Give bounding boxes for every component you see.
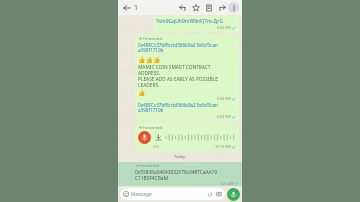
button[interactable]: Forwarded: [135, 34, 239, 121]
button[interactable]: Forwarded: [135, 123, 239, 151]
staticText: 0x4BFCc37bfflcrtd566b9a21b6cf3can a390f1…: [138, 42, 218, 54]
button[interactable]: Reply: [177, 2, 188, 13]
button[interactable]: Record voice message: [227, 188, 240, 201]
staticText: Forwarded: [140, 163, 160, 168]
button[interactable]: Forwarded: [118, 162, 242, 186]
button[interactable]: 7sln9GqUh9mW9nFJ7m-ZjrG: [153, 16, 239, 32]
staticText: Message: [131, 191, 152, 198]
staticText: 7sln9GqUh9mW9nFJ7m-ZjrG: [156, 18, 224, 25]
staticText: 0x55836a04043032F76c048TCaAA19 C11B0F4CB…: [135, 169, 218, 181]
staticText: 6:53 PM: [217, 114, 231, 119]
button[interactable]: Message: [120, 188, 225, 200]
button[interactable]: Copy: [203, 2, 214, 13]
staticText: 0x4BFCc37bfflcrtd566b9a21b6cf3can a390f1…: [138, 102, 218, 114]
staticText: 6:24 PM: [217, 96, 231, 101]
staticText: 👍👍👍: [138, 56, 161, 63]
button[interactable]: Forward: [216, 2, 227, 13]
staticText: 7:21 AM: [220, 181, 234, 185]
button[interactable]: Download audio: [154, 133, 163, 142]
staticText: 2:11: [153, 144, 160, 149]
staticText: Forwarded: [143, 36, 163, 41]
button[interactable]: Star: [190, 2, 201, 13]
button[interactable]: More options: [228, 2, 239, 13]
staticText: 1: [134, 3, 139, 13]
staticText: Forwarded: [143, 125, 163, 130]
staticText: 6:03 PM: [217, 25, 231, 30]
staticText: 10:15 PM: [215, 144, 231, 149]
staticText: Today: [174, 154, 186, 159]
staticText: MAMIC COIN SMART CONTRACT ADDRESS. PLEAS…: [138, 64, 218, 88]
button[interactable]: Back: [121, 2, 132, 13]
staticText: 👍: [138, 89, 146, 96]
